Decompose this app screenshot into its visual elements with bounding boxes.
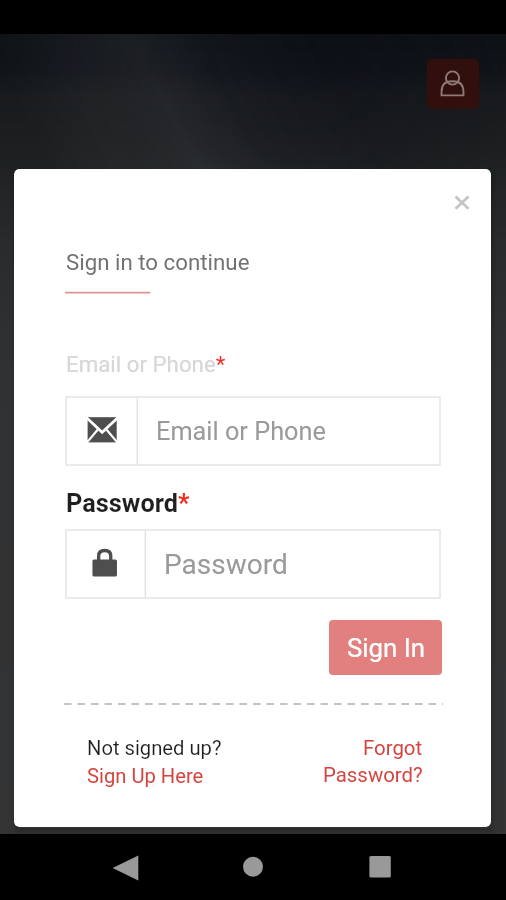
button[interactable]: Sign Up Here — [84, 764, 205, 790]
staticText: Sign in to continue — [66, 249, 250, 275]
staticText: Forgot — [363, 736, 423, 760]
staticText: Email or Phone* — [66, 351, 226, 377]
staticText: Email or Phone — [156, 417, 326, 447]
staticText: Password — [164, 548, 288, 581]
staticText: Sign In — [347, 633, 425, 663]
button[interactable]: Home — [220, 834, 286, 900]
staticText: Not signed up? — [87, 736, 222, 760]
button[interactable]: Password — [66, 530, 440, 598]
staticText: Password? — [323, 763, 423, 787]
button[interactable]: Recents — [347, 834, 413, 900]
staticText: Password* — [66, 489, 190, 519]
button[interactable]: Back — [92, 834, 158, 900]
staticText: Sign Up Here — [87, 764, 204, 788]
button[interactable]: Account — [427, 59, 479, 109]
button[interactable]: Email or Phone — [66, 397, 440, 465]
button[interactable]: Forgot — [322, 736, 423, 790]
button[interactable]: Sign In — [329, 620, 442, 675]
button[interactable]: Close — [447, 188, 477, 218]
